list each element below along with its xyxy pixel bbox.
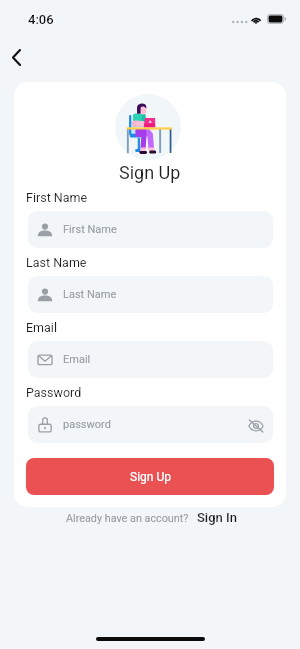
- staticText: Email: [63, 353, 91, 366]
- staticText: Last Name: [63, 288, 117, 301]
- staticText: First Name: [63, 223, 117, 236]
- button[interactable]: Show password: [246, 415, 266, 435]
- button[interactable]: Already have an account?: [66, 510, 237, 525]
- button[interactable]: First Name: [28, 211, 273, 248]
- staticText: Password: [26, 385, 82, 400]
- button[interactable]: Back: [0, 41, 33, 74]
- staticText: Email: [26, 320, 57, 335]
- staticText: Sign In: [197, 510, 237, 525]
- staticText: Sign Up: [130, 470, 171, 484]
- staticText: password: [63, 418, 111, 431]
- button[interactable]: Sign Up: [26, 458, 274, 495]
- staticText: Last Name: [26, 255, 87, 270]
- staticText: Sign Up: [119, 162, 181, 183]
- button[interactable]: Email: [28, 341, 273, 378]
- staticText: 4:06: [28, 12, 54, 27]
- button[interactable]: password: [28, 406, 273, 443]
- button[interactable]: Last Name: [28, 276, 273, 313]
- staticText: First Name: [26, 190, 88, 205]
- staticText: Already have an account?: [66, 512, 189, 525]
